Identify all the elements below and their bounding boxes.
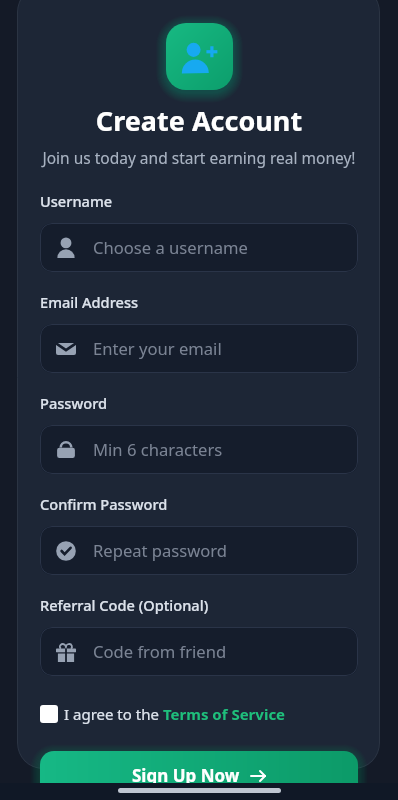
staticText: Join us today and start earning real mon…: [0, 147, 398, 168]
staticText: Choose a username: [93, 236, 248, 259]
staticText: Sign Up Now: [132, 764, 240, 787]
staticText: Confirm Password: [40, 494, 168, 514]
staticText: I agree to the: [64, 704, 163, 724]
button[interactable]: Min 6 characters: [40, 425, 358, 474]
staticText: Create Account: [0, 102, 398, 139]
staticText: Repeat password: [93, 539, 228, 562]
other: App logo: [166, 23, 233, 90]
staticText: Min 6 characters: [93, 438, 223, 461]
button[interactable]: Sign Up Now: [40, 751, 358, 800]
staticText: Referral Code (Optional): [40, 595, 209, 615]
staticText: Code from friend: [93, 640, 227, 663]
staticText: Email Address: [40, 292, 139, 312]
button[interactable]: Choose a username: [40, 223, 358, 272]
staticText: Username: [40, 191, 113, 211]
staticText: Password: [40, 393, 108, 413]
button[interactable]: Enter your email: [40, 324, 358, 373]
button[interactable]: Repeat password: [40, 526, 358, 575]
button[interactable]: Code from friend: [40, 627, 358, 676]
staticText: Terms of Service: [163, 704, 286, 724]
button[interactable]: I agree to the: [40, 704, 286, 724]
staticText: Enter your email: [93, 337, 222, 360]
